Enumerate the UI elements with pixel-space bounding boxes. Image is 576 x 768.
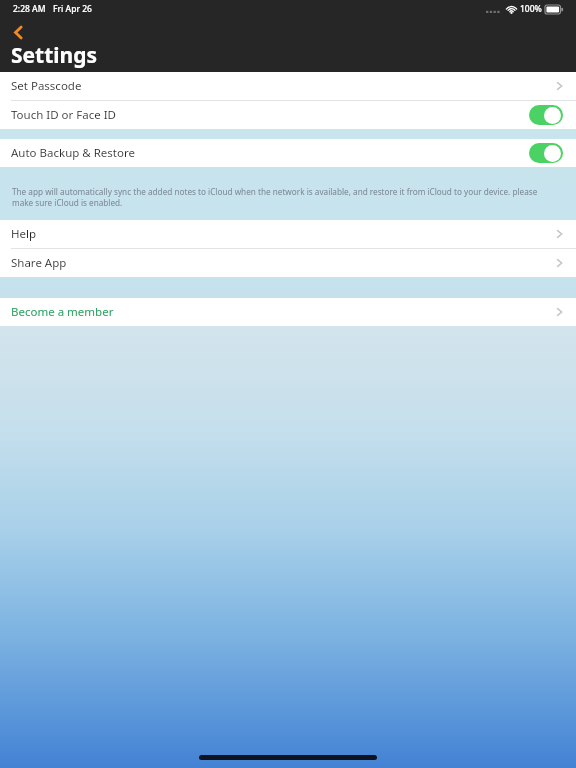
staticText: Touch ID or Face ID	[11, 107, 116, 123]
staticText: 2:28 AM	[13, 3, 46, 15]
staticText: The app will automatically sync the adde…	[12, 186, 551, 208]
staticText: 100%	[520, 3, 542, 15]
button[interactable]: Auto Backup & Restore switch, on	[529, 143, 563, 163]
button[interactable]: Touch ID or Face ID switch, on	[529, 105, 563, 125]
staticText: Share App	[11, 255, 67, 271]
button[interactable]: Share App	[0, 249, 576, 277]
staticText: Help	[11, 226, 37, 242]
staticText: Settings	[11, 41, 98, 70]
staticText: Become a member	[11, 304, 114, 320]
button[interactable]: Help	[0, 220, 576, 248]
button[interactable]: Auto Backup & Restore	[0, 139, 576, 167]
staticText: Auto Backup & Restore	[11, 145, 135, 161]
button[interactable]: Back	[2, 16, 34, 48]
button[interactable]: Become a member	[0, 298, 576, 326]
staticText: Fri Apr 26	[53, 3, 92, 15]
button[interactable]: Touch ID or Face ID	[0, 101, 576, 129]
staticText: Set Passcode	[11, 78, 82, 94]
button[interactable]: Set Passcode	[0, 72, 576, 100]
